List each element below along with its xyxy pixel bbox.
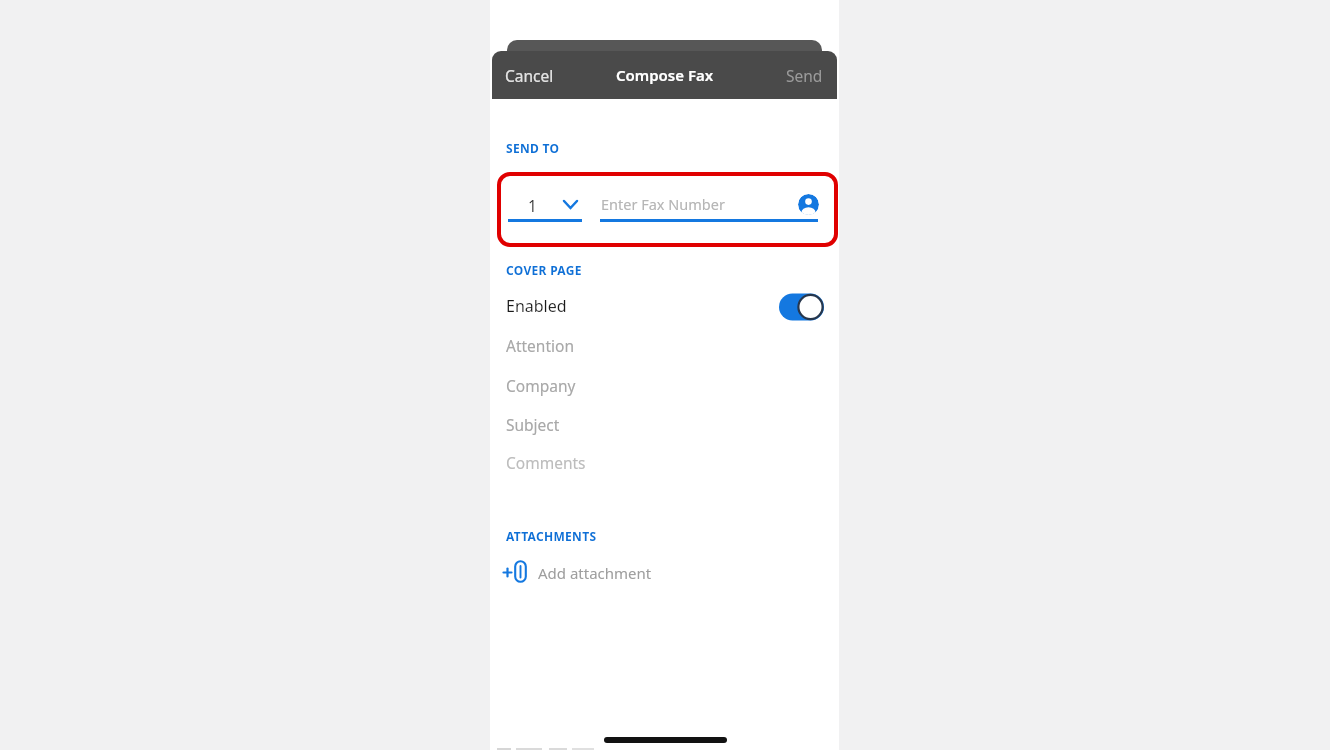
- button[interactable]: Subject: [506, 410, 560, 438]
- button[interactable]: Cancel: [505, 65, 554, 86]
- staticText: Add attachment: [538, 563, 652, 583]
- button[interactable]: [798, 194, 819, 215]
- button[interactable]: Send: [786, 65, 823, 86]
- staticText: Comments: [506, 452, 586, 473]
- button[interactable]: Attention: [506, 331, 574, 359]
- staticText: ATTACHMENTS: [506, 528, 597, 544]
- button[interactable]: [497, 172, 838, 247]
- staticText: Cancel: [505, 65, 554, 86]
- staticText: Send: [786, 65, 823, 86]
- staticText: Subject: [506, 414, 560, 435]
- staticText: 1: [528, 195, 537, 216]
- button[interactable]: Comments: [506, 448, 586, 476]
- staticText: Attention: [506, 335, 574, 356]
- button[interactable]: Add attachment: [500, 558, 700, 588]
- staticText: Enter Fax Number: [601, 194, 725, 214]
- staticText: Compose Fax: [616, 65, 714, 85]
- staticText: Enabled: [506, 295, 567, 317]
- button[interactable]: [779, 293, 824, 321]
- button[interactable]: Company: [506, 371, 576, 399]
- staticText: SEND TO: [506, 140, 560, 156]
- staticText: COVER PAGE: [506, 262, 582, 278]
- staticText: Company: [506, 375, 576, 396]
